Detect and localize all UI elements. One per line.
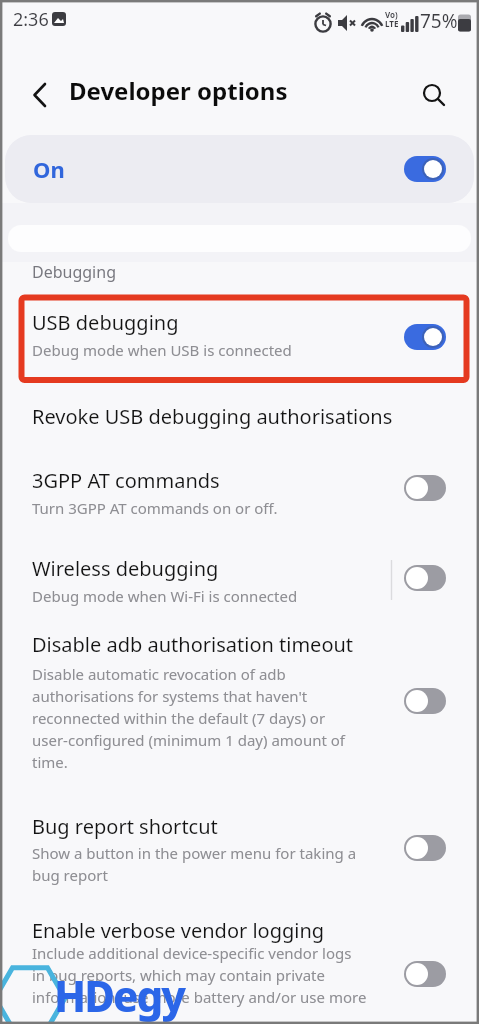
- staticText: Disable adb authorisation timeout: [32, 631, 354, 658]
- button[interactable]: On: [5, 135, 474, 203]
- button[interactable]: [404, 475, 446, 501]
- staticText: HDegy: [54, 967, 184, 1024]
- staticText: Developer options: [69, 74, 288, 107]
- button[interactable]: [404, 565, 446, 591]
- staticText: 3GPP AT commands: [32, 467, 220, 494]
- button[interactable]: [0, 906, 479, 1024]
- button[interactable]: [0, 296, 479, 380]
- button[interactable]: [404, 688, 446, 714]
- button[interactable]: [20, 75, 60, 115]
- button[interactable]: [0, 390, 479, 446]
- staticText: Vo): [385, 9, 398, 20]
- button[interactable]: [0, 458, 479, 528]
- staticText: Wireless debugging: [32, 555, 219, 582]
- button[interactable]: [0, 806, 479, 898]
- button[interactable]: [404, 961, 446, 987]
- staticText: On: [33, 154, 65, 184]
- button[interactable]: [0, 548, 479, 614]
- button[interactable]: [0, 624, 479, 784]
- staticText: Include additional device-specific vendo…: [32, 943, 367, 1008]
- button[interactable]: [404, 835, 446, 861]
- button[interactable]: [404, 156, 446, 182]
- staticText: Disable automatic revocation of adb auth…: [32, 664, 346, 773]
- staticText: LTE: [385, 18, 399, 29]
- staticText: Turn 3GPP AT commands on or off.: [32, 498, 278, 518]
- staticText: Enable verbose vendor logging: [32, 917, 325, 944]
- staticText: Debug mode when USB is connected: [32, 340, 292, 360]
- staticText: 75%: [420, 8, 458, 34]
- staticText: Debug mode when Wi-Fi is connected: [32, 586, 298, 606]
- staticText: Debugging: [32, 261, 116, 283]
- staticText: Bug report shortcut: [32, 813, 218, 840]
- staticText: 2:36: [13, 7, 49, 32]
- button[interactable]: [412, 75, 456, 115]
- staticText: USB debugging: [32, 309, 179, 336]
- staticText: Show a button in the power menu for taki…: [32, 843, 357, 886]
- button[interactable]: [404, 324, 446, 350]
- staticText: Revoke USB debugging authorisations: [32, 403, 393, 430]
